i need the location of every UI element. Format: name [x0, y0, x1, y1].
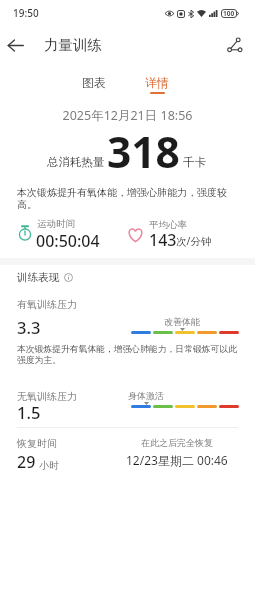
- staticText: 12/23星期二 00:46: [126, 452, 228, 468]
- staticText: 力量训练: [44, 36, 102, 54]
- staticText: 00:50:04: [36, 230, 100, 252]
- button[interactable]: Share: [220, 31, 250, 59]
- staticText: 19:50: [13, 6, 39, 20]
- button[interactable]: Back: [0, 31, 30, 59]
- staticText: 运动时间: [37, 218, 75, 230]
- button[interactable]: 图表: [74, 70, 114, 96]
- staticText: 29: [17, 451, 36, 473]
- staticText: 在此之后完全恢复: [141, 437, 213, 448]
- staticText: 改善体能: [164, 316, 200, 327]
- staticText: 图表: [82, 75, 106, 90]
- staticText: 详情: [145, 75, 169, 90]
- staticText: 100: [223, 9, 235, 18]
- staticText: 小时: [39, 459, 59, 472]
- staticText: 平均心率: [149, 219, 187, 231]
- staticText: 318: [107, 123, 180, 181]
- staticText: 本次锻炼提升有氧体能，增强心肺能力，强度较高。: [17, 186, 238, 211]
- staticText: 无氧训练压力: [17, 390, 77, 403]
- staticText: 恢复时间: [17, 437, 57, 450]
- staticText: 本次锻炼提升有氧体能，增强心肺能力，日常锻炼可以此强度为主。: [17, 344, 238, 365]
- staticText: 总消耗热量: [47, 155, 105, 169]
- staticText: 1.5: [17, 401, 41, 423]
- staticText: 千卡: [183, 155, 206, 169]
- staticText: 143: [149, 229, 177, 251]
- staticText: 3.3: [17, 316, 41, 338]
- staticText: 训练表现: [17, 271, 59, 284]
- staticText: 次/分钟: [176, 234, 212, 248]
- staticText: 有氧训练压力: [17, 298, 77, 311]
- staticText: 2025年12月21日 18:56: [0, 107, 255, 124]
- staticText: 身体激活: [128, 390, 164, 401]
- button[interactable]: 详情: [137, 70, 177, 96]
